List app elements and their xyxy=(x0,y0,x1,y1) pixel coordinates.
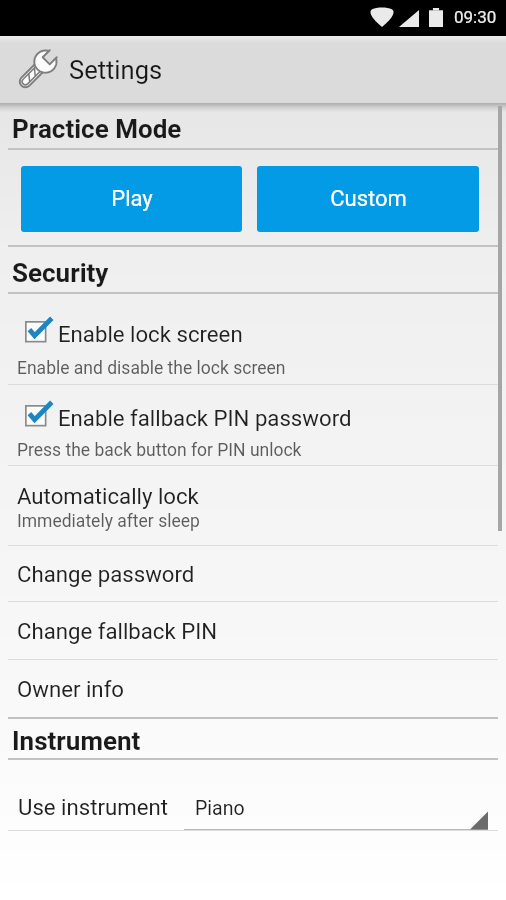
staticText: 09:30 xyxy=(454,7,497,27)
staticText: Instrument xyxy=(12,726,141,756)
staticText: Custom xyxy=(330,186,407,212)
staticText: Practice Mode xyxy=(12,114,182,144)
button[interactable]: Enable lock screen xyxy=(0,294,506,384)
staticText: Enable fallback PIN password xyxy=(58,405,352,431)
button[interactable]: Play xyxy=(21,166,242,232)
staticText: Owner info xyxy=(17,676,124,702)
staticText: Piano xyxy=(195,797,245,820)
staticText: Settings xyxy=(69,55,163,85)
button[interactable]: Owner info xyxy=(0,660,506,717)
staticText: Immediately after sleep xyxy=(17,511,200,532)
staticText: Press the back button for PIN unlock xyxy=(17,440,302,461)
button[interactable]: Change password xyxy=(0,546,506,601)
button[interactable]: Use instrument xyxy=(0,760,506,831)
button[interactable]: Automatically lock xyxy=(0,466,506,545)
staticText: Play xyxy=(111,186,153,212)
staticText: Use instrument xyxy=(18,794,168,820)
button[interactable]: Custom xyxy=(257,166,479,232)
other: Settings xyxy=(11,44,63,96)
staticText: Change fallback PIN xyxy=(17,618,218,644)
button[interactable]: Enable fallback PIN password xyxy=(0,385,506,465)
staticText: Enable and disable the lock screen xyxy=(17,358,286,379)
staticText: Enable lock screen xyxy=(58,321,243,347)
button[interactable]: Change fallback PIN xyxy=(0,602,506,659)
staticText: Automatically lock xyxy=(17,483,199,509)
staticText: Security xyxy=(12,258,109,288)
staticText: Change password xyxy=(17,561,195,587)
